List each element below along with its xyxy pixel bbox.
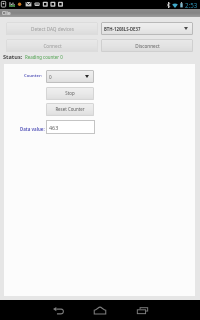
button[interactable]: Stop	[46, 87, 94, 100]
staticText: Reset Counter	[55, 106, 85, 112]
staticText: 463	[49, 124, 59, 131]
button[interactable]: Detect DAQ devices	[6, 22, 98, 35]
staticText: Reading counter 0	[25, 54, 63, 60]
staticText: Status:	[3, 53, 23, 61]
staticText: BTH-1208LS-DE37	[104, 26, 141, 32]
staticText: 0	[49, 74, 52, 80]
staticText: Data value:	[20, 126, 45, 132]
staticText: Clie	[2, 10, 11, 17]
button[interactable]: Home	[79, 300, 121, 320]
button[interactable]: Disconnect	[101, 39, 193, 52]
staticText: Stop	[65, 90, 75, 96]
button[interactable]: 0	[46, 70, 94, 83]
staticText: 2:53	[185, 1, 198, 9]
button[interactable]: Back	[37, 300, 79, 320]
button[interactable]: Recent apps	[121, 300, 163, 320]
staticText: Detect DAQ devices	[31, 26, 74, 32]
staticText: Counter:	[24, 73, 43, 79]
staticText: Disconnect	[135, 43, 160, 49]
button[interactable]: Connect	[6, 39, 98, 52]
staticText: Connect	[43, 43, 62, 49]
button[interactable]: BTH-1208LS-DE37	[101, 22, 193, 35]
button[interactable]: Reset Counter	[46, 103, 94, 116]
